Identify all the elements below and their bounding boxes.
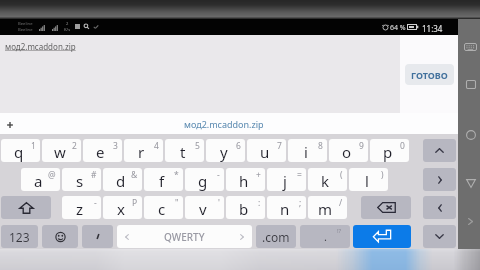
button[interactable]: Right bbox=[423, 168, 456, 191]
staticText: x bbox=[117, 199, 125, 219]
button[interactable]: Recents bbox=[466, 80, 476, 89]
staticText: 9 bbox=[359, 140, 364, 152]
staticText: l bbox=[365, 171, 369, 191]
staticText: 6 bbox=[236, 140, 241, 152]
button[interactable]: .com bbox=[256, 225, 296, 248]
button[interactable]: g bbox=[185, 168, 224, 191]
staticText: u bbox=[260, 142, 270, 162]
button[interactable]: Home bbox=[466, 130, 476, 140]
staticText: K/s bbox=[64, 27, 71, 33]
staticText: 7 bbox=[277, 140, 282, 152]
button[interactable]: e bbox=[83, 139, 122, 162]
button[interactable]: l bbox=[349, 168, 388, 191]
staticText: n bbox=[280, 199, 290, 219]
staticText: t bbox=[180, 142, 186, 162]
button[interactable]: w bbox=[42, 139, 81, 162]
staticText: i bbox=[304, 142, 308, 162]
staticText: v bbox=[199, 199, 207, 219]
staticText: 2 bbox=[72, 140, 77, 152]
staticText: ГОТОВО bbox=[411, 69, 448, 81]
button[interactable]: f bbox=[144, 168, 183, 191]
button[interactable]: s bbox=[62, 168, 101, 191]
button[interactable]: h bbox=[226, 168, 265, 191]
button[interactable]: Left bbox=[423, 196, 456, 219]
button[interactable]: o bbox=[329, 139, 368, 162]
button[interactable]: Backspace bbox=[361, 196, 411, 219]
button[interactable]: Keyboard bbox=[464, 43, 477, 51]
button[interactable]: p bbox=[370, 139, 409, 162]
button[interactable]: мод2.mcaddon.zip bbox=[184, 118, 264, 130]
button[interactable]: Back bbox=[466, 179, 476, 188]
staticText: & bbox=[131, 169, 138, 181]
button[interactable]: Add bbox=[4, 119, 16, 131]
button[interactable]: t bbox=[165, 139, 204, 162]
staticText: !? bbox=[337, 227, 342, 235]
button[interactable]: n bbox=[267, 196, 306, 219]
staticText: .com bbox=[262, 229, 290, 245]
button[interactable]: v bbox=[185, 196, 224, 219]
staticText: : bbox=[258, 197, 261, 209]
staticText: @ bbox=[48, 169, 56, 181]
staticText: 2 bbox=[66, 21, 69, 27]
button[interactable]: q bbox=[1, 139, 40, 162]
button[interactable]: Expand bbox=[468, 218, 473, 225]
staticText: - bbox=[217, 169, 220, 181]
button[interactable]: m bbox=[308, 196, 347, 219]
button[interactable]: Slash bbox=[82, 225, 113, 248]
staticText: m bbox=[318, 199, 333, 219]
staticText: " bbox=[175, 197, 179, 209]
button[interactable]: 123 bbox=[1, 225, 38, 248]
staticText: . bbox=[324, 229, 327, 244]
staticText: 8 bbox=[318, 140, 323, 152]
staticText: + bbox=[256, 169, 261, 181]
staticText: a bbox=[34, 171, 43, 191]
button[interactable]: r bbox=[124, 139, 163, 162]
staticText: # bbox=[91, 169, 97, 181]
staticText: f bbox=[159, 171, 165, 191]
staticText: r bbox=[138, 142, 145, 162]
staticText: ' bbox=[218, 197, 220, 209]
staticText: y bbox=[220, 142, 228, 162]
button[interactable]: y bbox=[206, 139, 245, 162]
staticText: c bbox=[158, 199, 166, 219]
staticText: s bbox=[76, 171, 84, 191]
button[interactable]: ГОТОВО bbox=[405, 64, 454, 85]
staticText: g bbox=[198, 171, 208, 191]
staticText: h bbox=[239, 171, 249, 191]
button[interactable]: Shift bbox=[1, 196, 51, 219]
staticText: 4 bbox=[154, 140, 159, 152]
button[interactable]: j bbox=[267, 168, 306, 191]
staticText: o bbox=[342, 142, 352, 162]
button[interactable]: b bbox=[226, 196, 265, 219]
button[interactable]: a bbox=[21, 168, 60, 191]
staticText: e bbox=[96, 142, 105, 162]
button[interactable]: d bbox=[103, 168, 142, 191]
staticText: p bbox=[383, 142, 393, 162]
staticText: ( bbox=[340, 169, 343, 181]
button[interactable]: Up bbox=[423, 139, 456, 162]
button[interactable]: . bbox=[300, 225, 350, 248]
button[interactable]: мод2.mcaddon.zip bbox=[5, 41, 76, 52]
staticText: ; bbox=[299, 197, 302, 209]
staticText: ) bbox=[381, 169, 384, 181]
button[interactable]: x bbox=[103, 196, 142, 219]
button[interactable]: c bbox=[144, 196, 183, 219]
button[interactable]: z bbox=[62, 196, 101, 219]
button[interactable]: k bbox=[308, 168, 347, 191]
button[interactable]: Enter bbox=[353, 225, 411, 248]
button[interactable]: QWERTY bbox=[117, 225, 252, 248]
button[interactable]: i bbox=[288, 139, 327, 162]
staticText: 11:34 bbox=[422, 23, 443, 34]
staticText: w bbox=[54, 142, 66, 162]
button[interactable]: Emoji bbox=[42, 225, 78, 248]
staticText: 1 bbox=[31, 140, 36, 152]
staticText: 64 % bbox=[390, 23, 406, 33]
button[interactable]: Down bbox=[423, 225, 456, 248]
staticText: 3 bbox=[113, 140, 118, 152]
staticText: / bbox=[339, 197, 343, 209]
staticText: b bbox=[239, 199, 249, 219]
button[interactable]: u bbox=[247, 139, 286, 162]
staticText: 0 bbox=[400, 140, 405, 152]
staticText: 123 bbox=[9, 229, 30, 245]
staticText: Beeline bbox=[18, 27, 33, 33]
